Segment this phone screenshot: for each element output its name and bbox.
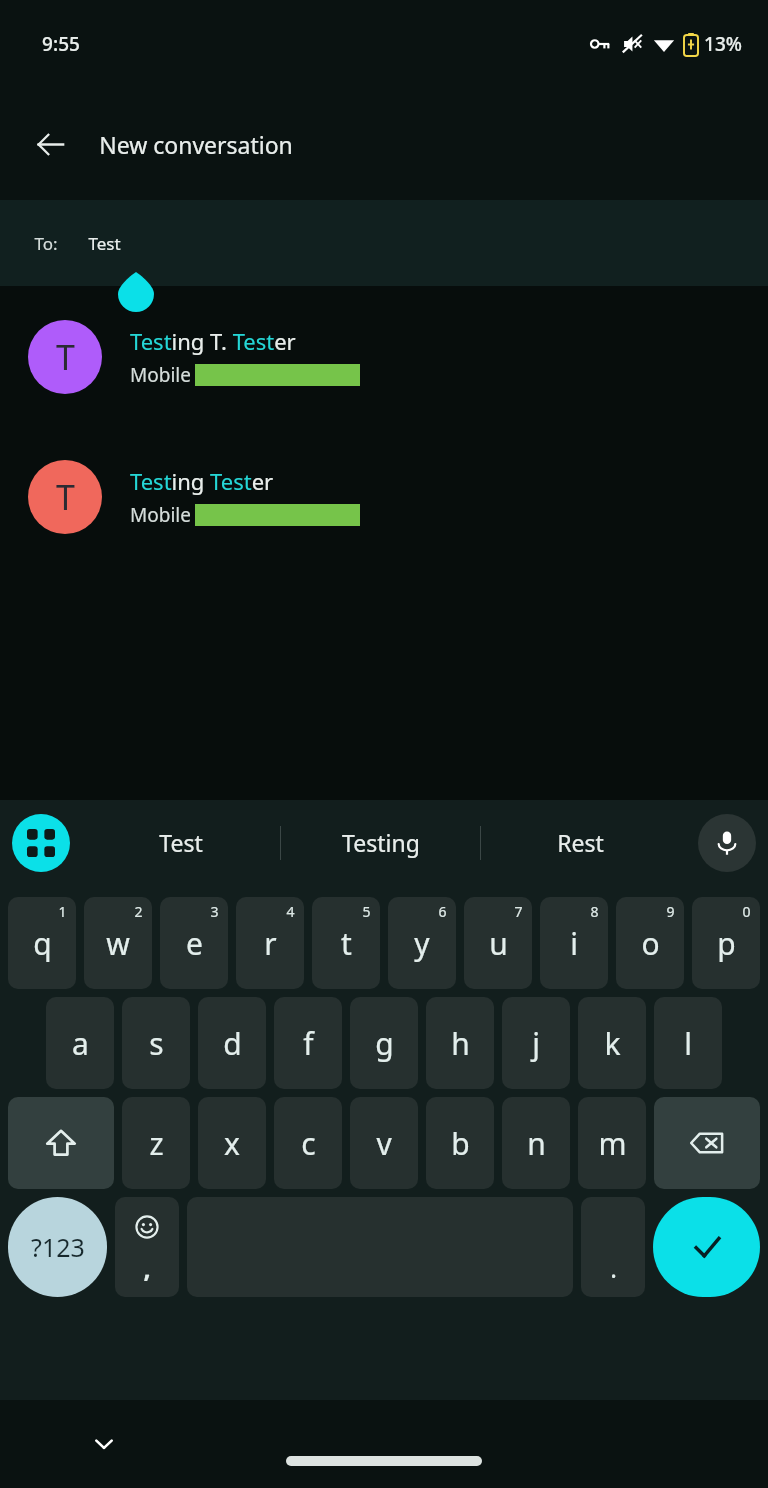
staticText: p: [717, 923, 736, 964]
staticText: c: [301, 1123, 316, 1164]
staticText: 9:55: [42, 31, 80, 57]
staticText: n: [527, 1123, 546, 1164]
button[interactable]: y: [388, 897, 456, 989]
staticText: Mobile: [130, 362, 191, 388]
button[interactable]: Hide keyboard: [88, 1428, 120, 1460]
staticText: l: [684, 1023, 692, 1064]
staticText: 4: [286, 902, 295, 921]
staticText: 0: [742, 902, 751, 921]
button[interactable]: v: [350, 1097, 418, 1189]
staticText: 5: [362, 902, 371, 921]
staticText: .: [610, 1251, 617, 1285]
button[interactable]: Voice input: [698, 814, 756, 872]
staticText: Testing: [342, 827, 420, 858]
staticText: o: [641, 923, 660, 964]
staticText: New conversation: [99, 129, 293, 160]
staticText: k: [604, 1023, 621, 1064]
staticText: ,: [143, 1251, 151, 1285]
button[interactable]: Back: [26, 120, 74, 168]
staticText: e: [186, 923, 203, 964]
button[interactable]: b: [426, 1097, 494, 1189]
button[interactable]: Shift: [8, 1097, 114, 1189]
staticText: i: [570, 923, 578, 964]
staticText: g: [375, 1023, 394, 1064]
staticText: To:: [34, 232, 58, 255]
button[interactable]: Test: [82, 800, 280, 885]
button[interactable]: f: [274, 997, 342, 1089]
button[interactable]: t: [312, 897, 380, 989]
button[interactable]: T: [0, 307, 768, 407]
staticText: v: [376, 1123, 392, 1164]
staticText: 1: [58, 902, 67, 921]
button[interactable]: .: [581, 1197, 645, 1297]
staticText: Mobile: [130, 502, 191, 528]
button[interactable]: a: [46, 997, 114, 1089]
staticText: ?123: [31, 1230, 85, 1264]
button[interactable]: h: [426, 997, 494, 1089]
button[interactable]: c: [274, 1097, 342, 1189]
staticText: a: [72, 1023, 89, 1064]
button[interactable]: k: [578, 997, 646, 1089]
staticText: r: [264, 923, 277, 964]
button[interactable]: q: [8, 897, 76, 989]
button[interactable]: To:: [0, 200, 768, 286]
staticText: 3: [210, 902, 219, 921]
button[interactable]: Emoji: [115, 1197, 179, 1297]
staticText: u: [489, 923, 508, 964]
staticText: s: [149, 1023, 164, 1064]
staticText: 6: [438, 902, 447, 921]
staticText: 2: [134, 902, 143, 921]
staticText: m: [598, 1123, 627, 1164]
button[interactable]: Testing: [281, 800, 480, 885]
staticText: 7: [514, 902, 523, 921]
button[interactable]: Keyboard tools: [12, 814, 70, 872]
staticText: T: [56, 334, 75, 380]
button[interactable]: l: [654, 997, 722, 1089]
staticText: z: [149, 1123, 164, 1164]
staticText: x: [224, 1123, 240, 1164]
staticText: Testing Tester: [130, 466, 274, 496]
staticText: j: [532, 1023, 540, 1064]
staticText: w: [106, 923, 130, 964]
button[interactable]: x: [198, 1097, 266, 1189]
staticText: f: [303, 1023, 314, 1064]
staticText: b: [451, 1123, 470, 1164]
button[interactable]: j: [502, 997, 570, 1089]
button[interactable]: u: [464, 897, 532, 989]
staticText: h: [451, 1023, 470, 1064]
staticText: 9: [666, 902, 675, 921]
staticText: Testing T. Tester: [130, 326, 296, 356]
button[interactable]: e: [160, 897, 228, 989]
staticText: Rest: [557, 827, 604, 858]
button[interactable]: n: [502, 1097, 570, 1189]
button[interactable]: p: [692, 897, 760, 989]
button[interactable]: d: [198, 997, 266, 1089]
staticText: 8: [590, 902, 599, 921]
button[interactable]: r: [236, 897, 304, 989]
button[interactable]: Rest: [481, 800, 680, 885]
staticText: d: [223, 1023, 242, 1064]
button[interactable]: g: [350, 997, 418, 1089]
button[interactable]: Send: [653, 1197, 760, 1297]
button[interactable]: T: [0, 447, 768, 547]
button[interactable]: i: [540, 897, 608, 989]
button[interactable]: z: [122, 1097, 190, 1189]
staticText: t: [341, 923, 352, 964]
staticText: 13%: [704, 31, 742, 57]
button[interactable]: w: [84, 897, 152, 989]
button[interactable]: o: [616, 897, 684, 989]
staticText: T: [56, 474, 75, 520]
button[interactable]: m: [578, 1097, 646, 1189]
staticText: Test: [88, 232, 121, 255]
staticText: Test: [159, 827, 203, 858]
staticText: y: [414, 923, 430, 964]
button[interactable]: Backspace: [654, 1097, 760, 1189]
staticText: q: [33, 923, 52, 964]
button[interactable]: s: [122, 997, 190, 1089]
button[interactable]: ?123: [8, 1197, 107, 1297]
